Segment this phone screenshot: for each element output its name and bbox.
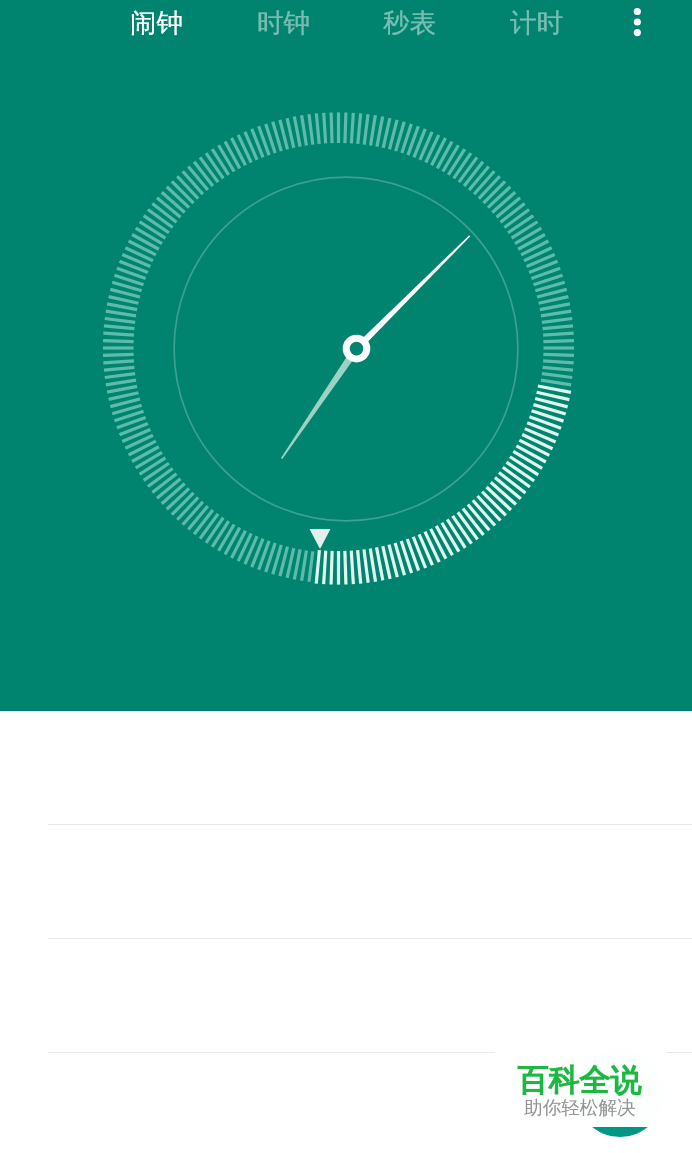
staticText: 计时 xyxy=(510,6,563,39)
button[interactable]: More options xyxy=(607,0,667,47)
button[interactable]: Start stopwatch xyxy=(576,1049,664,1137)
staticText: 闹钟 xyxy=(130,6,183,39)
button[interactable]: 闹钟 xyxy=(93,0,219,47)
button[interactable]: 秒表 xyxy=(346,0,472,47)
staticText: 助你轻松解决 xyxy=(524,1096,636,1119)
staticText: 百科全说 xyxy=(517,1061,641,1100)
button[interactable]: 时钟 xyxy=(220,0,346,47)
button[interactable]: 计时 xyxy=(473,0,599,47)
staticText: 秒表 xyxy=(383,6,436,39)
staticText: 时钟 xyxy=(257,6,310,39)
